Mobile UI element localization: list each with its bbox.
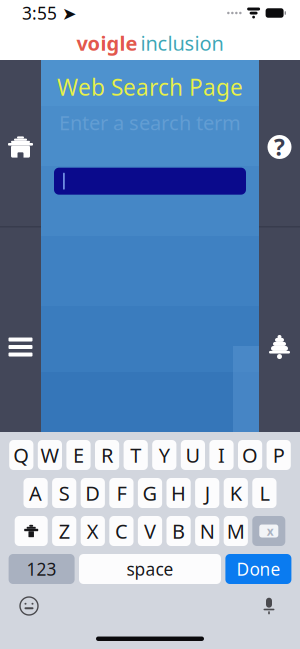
button[interactable]: V [138,516,162,546]
button[interactable]: F [109,478,133,508]
staticText: U [185,442,200,468]
staticText: X [87,518,99,544]
button[interactable]: Home [0,122,41,172]
button[interactable]: K [224,478,248,508]
staticText: G [142,480,157,506]
staticText: L [259,480,269,506]
staticText: O [242,442,258,468]
button[interactable]: Notifications [259,322,300,372]
button[interactable]: U [181,440,205,470]
staticText: H [171,480,186,506]
staticText: Web Search Page [57,72,243,102]
button[interactable]: Shift [15,516,48,546]
button[interactable]: A [23,478,48,508]
staticText: A [29,480,42,506]
button[interactable]: Z [52,516,76,546]
staticText: D [85,480,100,506]
staticText: voigle [76,30,137,56]
button[interactable]: D [81,478,105,508]
button[interactable]: E [66,440,91,470]
staticText: M [227,518,245,544]
staticText: R [101,442,113,468]
button[interactable]: X [81,516,105,546]
staticText: 3:55 ➤ [22,1,77,24]
button[interactable]: P [267,440,291,470]
button[interactable]: W [38,440,62,470]
staticText: Q [13,442,29,468]
button[interactable]: J [195,478,219,508]
staticText: W [40,442,59,468]
button[interactable]: T [124,440,148,470]
staticText: B [172,518,185,544]
staticText: C [115,518,128,544]
button[interactable]: Q [9,440,33,470]
staticText: F [116,480,126,506]
staticText: P [273,442,285,468]
button[interactable]: G [138,478,162,508]
staticText: space [126,557,173,580]
button[interactable]: Dictation [252,592,286,620]
button[interactable]: Menu [0,322,41,372]
button[interactable]: O [238,440,262,470]
staticText: J [205,480,210,506]
button[interactable]: Y [152,440,176,470]
staticText: inclusion [140,30,223,56]
button[interactable]: H [166,478,191,508]
button[interactable]: M [224,516,248,546]
button[interactable]: Delete [252,516,285,546]
staticText: Enter a search term [59,109,241,136]
staticText: K [230,480,242,506]
button[interactable]: I [209,440,234,470]
button[interactable]: N [195,516,219,546]
button[interactable]: Help [259,122,300,172]
button[interactable]: Emoji [12,592,46,620]
button[interactable]: L [252,478,276,508]
staticText: S [59,480,70,506]
button[interactable]: C [109,516,133,546]
button[interactable]: 123 [9,554,75,584]
button[interactable]: R [95,440,119,470]
staticText: Z [59,518,70,544]
button[interactable]: space [79,554,221,584]
staticText: T [130,442,141,468]
staticText: x [267,523,274,539]
staticText: I [218,442,225,468]
button[interactable]: S [52,478,76,508]
staticText: Done [236,557,280,580]
staticText: N [200,518,215,544]
button[interactable]: B [166,516,191,546]
staticText: ? [274,132,285,162]
staticText: V [144,518,156,544]
button[interactable]: Done [225,554,291,584]
staticText: E [73,442,84,468]
staticText: Y [159,442,170,468]
staticText: 123 [27,557,57,580]
